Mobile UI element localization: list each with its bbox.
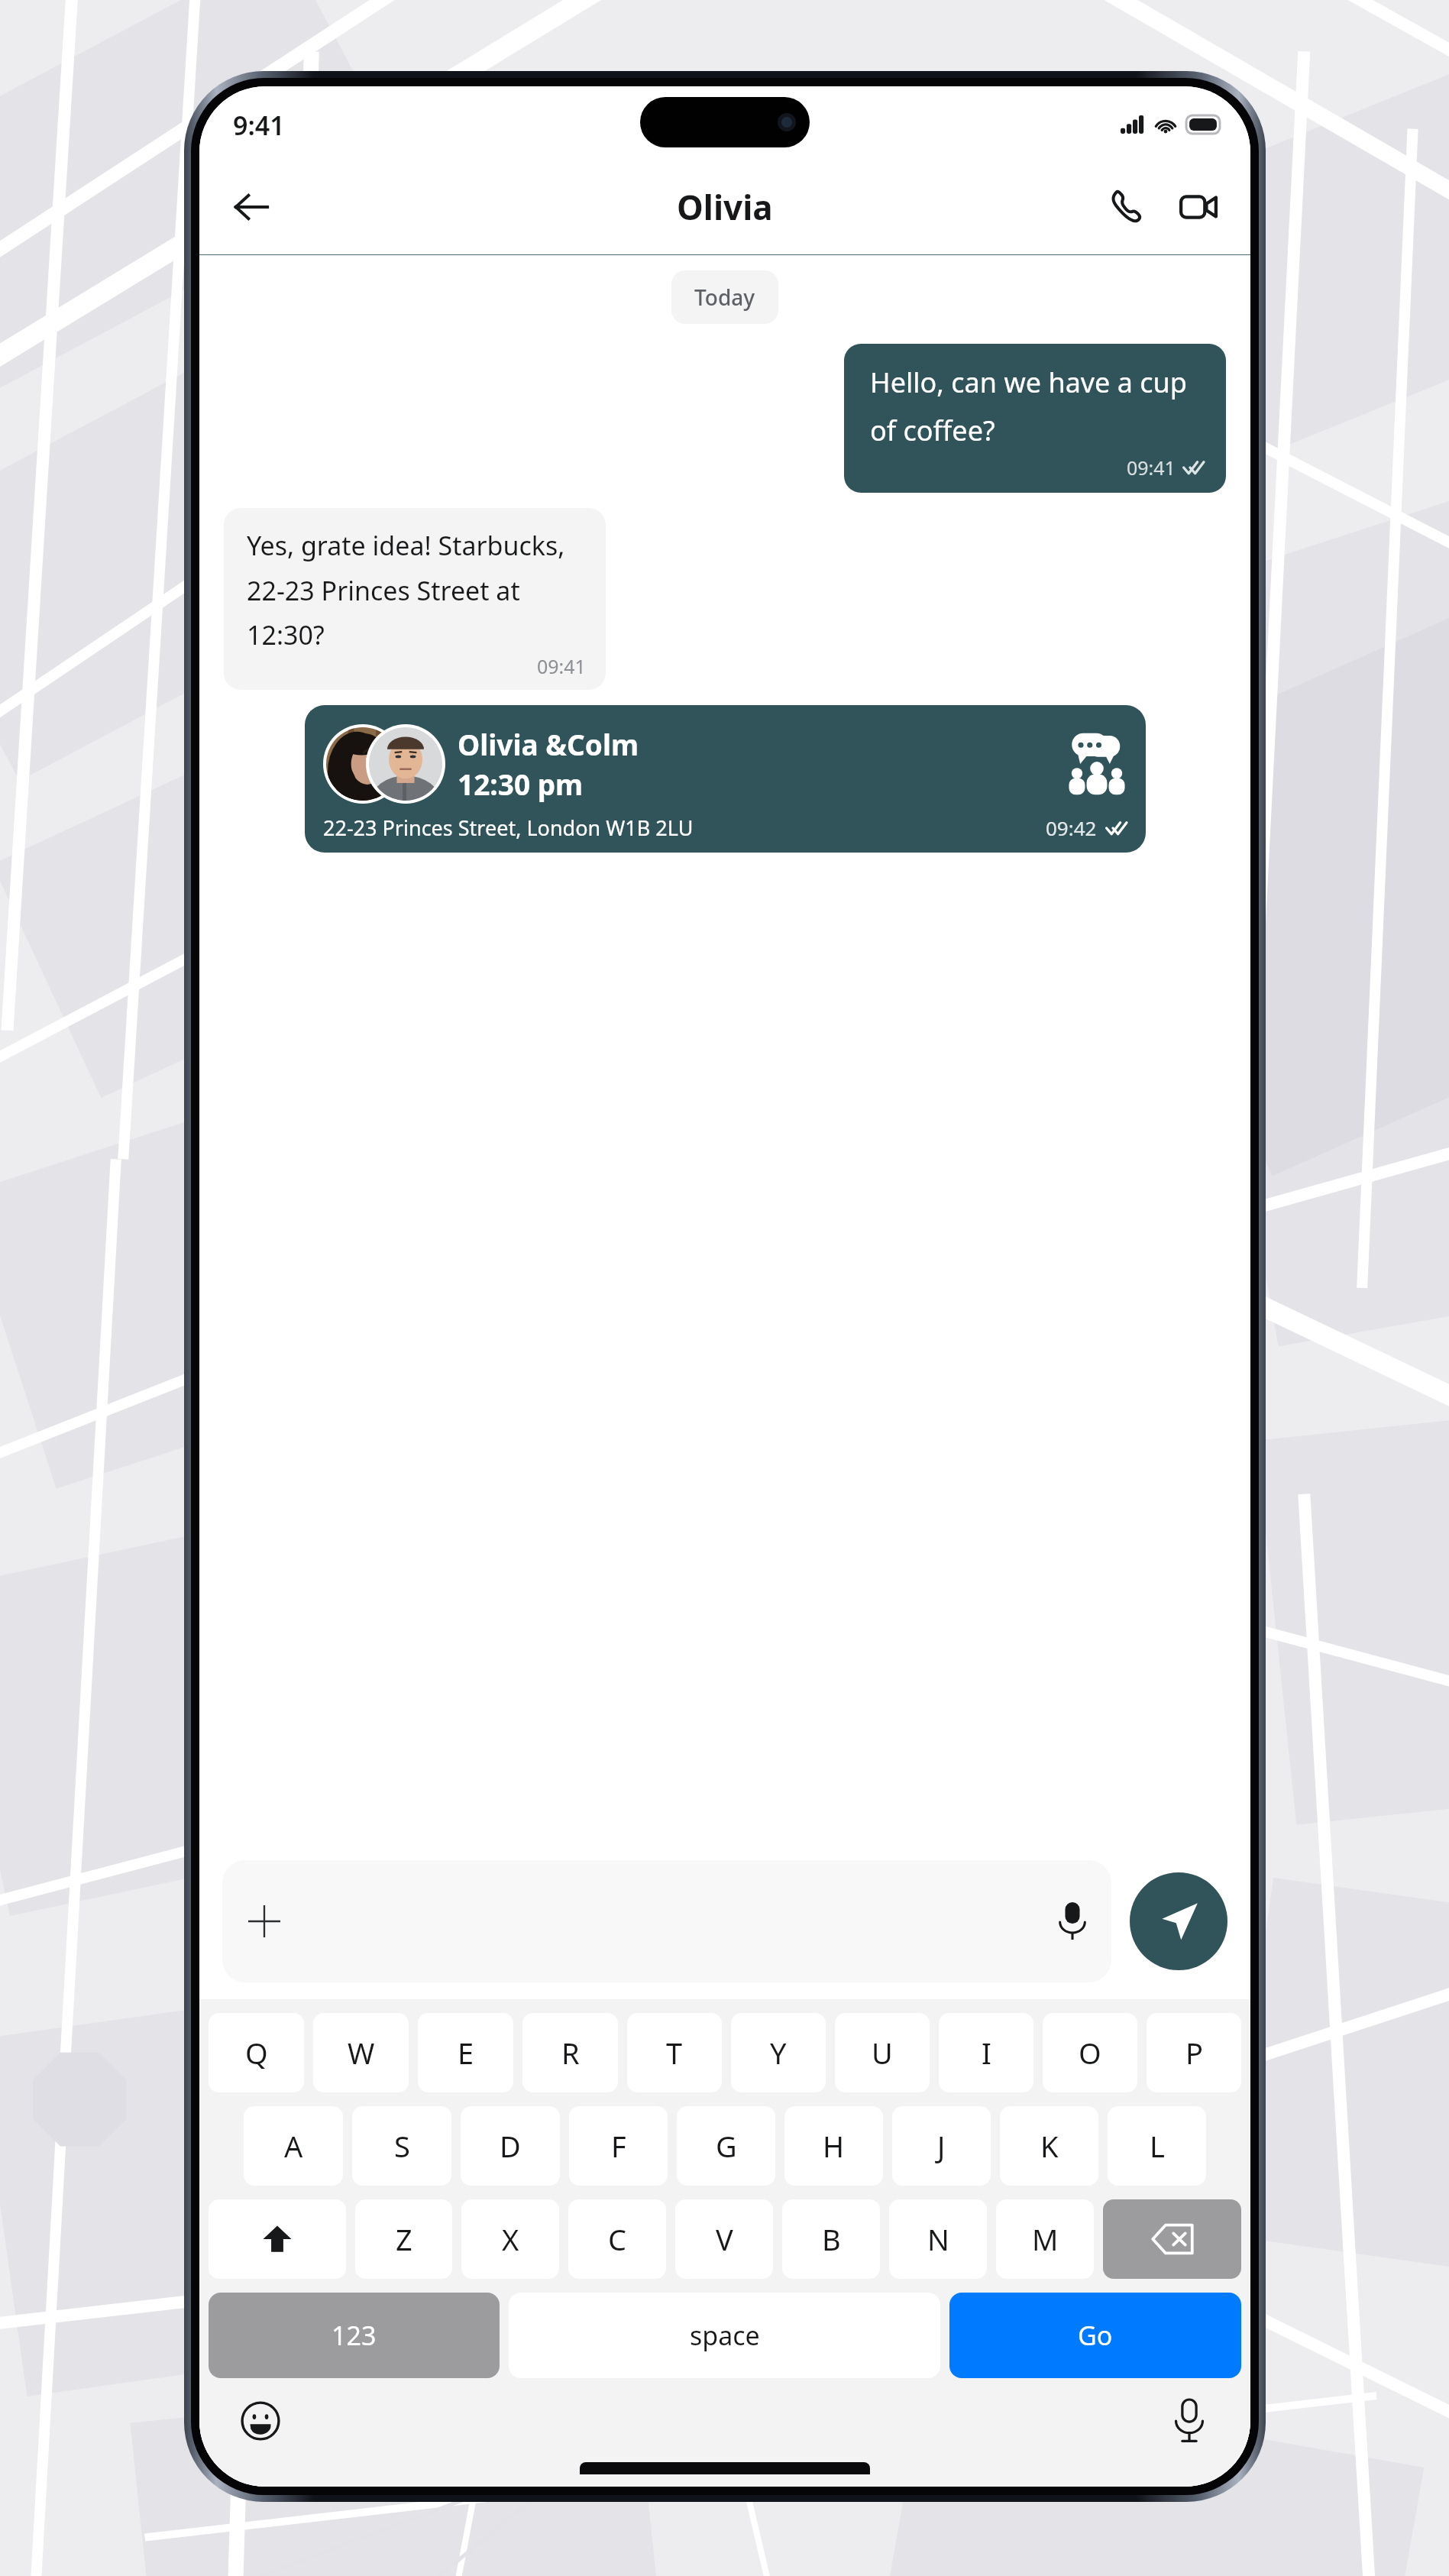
button[interactable]: W bbox=[313, 2013, 409, 2092]
staticText: Y bbox=[770, 2033, 787, 2073]
button[interactable]: A bbox=[244, 2106, 343, 2186]
button[interactable]: S bbox=[352, 2106, 451, 2186]
staticText: Z bbox=[396, 2219, 412, 2259]
staticText: S bbox=[394, 2126, 410, 2166]
staticText: Hello, can we have a cup of coffee? bbox=[870, 364, 1206, 448]
staticText: 12:30 pm bbox=[458, 765, 584, 803]
button[interactable]: P bbox=[1147, 2013, 1241, 2092]
staticText: Today bbox=[694, 283, 755, 312]
button[interactable]: I bbox=[939, 2013, 1033, 2092]
staticText: V bbox=[716, 2219, 733, 2259]
other: Attach bbox=[248, 1905, 280, 1937]
staticText: Olivia bbox=[677, 184, 773, 230]
staticText: C bbox=[608, 2219, 627, 2259]
button[interactable]: E bbox=[418, 2013, 513, 2092]
button[interactable]: space bbox=[509, 2293, 940, 2378]
button[interactable]: J bbox=[892, 2106, 991, 2186]
button[interactable]: C bbox=[568, 2199, 666, 2279]
button[interactable]: Z bbox=[355, 2199, 452, 2279]
button[interactable]: L bbox=[1108, 2106, 1206, 2186]
button[interactable]: Y bbox=[731, 2013, 826, 2092]
staticText: Go bbox=[1078, 2318, 1113, 2353]
staticText: X bbox=[502, 2219, 519, 2259]
button[interactable]: R bbox=[522, 2013, 618, 2092]
staticText: U bbox=[872, 2033, 893, 2073]
staticText: B bbox=[822, 2219, 841, 2259]
staticText: D bbox=[500, 2126, 521, 2166]
staticText: T bbox=[666, 2033, 683, 2073]
staticText: P bbox=[1185, 2033, 1203, 2073]
staticText: R bbox=[561, 2033, 580, 2073]
button[interactable]: M bbox=[996, 2199, 1094, 2279]
button[interactable]: O bbox=[1043, 2013, 1137, 2092]
button[interactable]: N bbox=[889, 2199, 987, 2279]
button[interactable]: Emoji bbox=[233, 2393, 288, 2448]
staticText: Q bbox=[245, 2033, 268, 2073]
button[interactable]: Send bbox=[1130, 1872, 1227, 1970]
button[interactable]: X bbox=[461, 2199, 559, 2279]
staticText: L bbox=[1150, 2126, 1165, 2166]
staticText: 09:41 bbox=[537, 653, 586, 679]
staticText: H bbox=[823, 2126, 845, 2166]
staticText: 123 bbox=[332, 2318, 377, 2353]
staticText: space bbox=[690, 2318, 760, 2353]
button[interactable]: Hello, can we have a cup of coffee? bbox=[844, 344, 1226, 493]
button[interactable]: Dictate bbox=[1162, 2393, 1217, 2448]
button[interactable]: U bbox=[835, 2013, 930, 2092]
staticText: E bbox=[458, 2033, 474, 2073]
button[interactable]: T bbox=[627, 2013, 722, 2092]
staticText: Olivia &Colm bbox=[458, 725, 639, 763]
button[interactable]: F bbox=[569, 2106, 668, 2186]
staticText: A bbox=[284, 2126, 303, 2166]
button[interactable]: Q bbox=[209, 2013, 304, 2092]
button[interactable]: Video call bbox=[1168, 176, 1229, 238]
button[interactable]: Olivia &Colm bbox=[305, 705, 1146, 853]
staticText: 09:42 bbox=[1046, 814, 1097, 841]
button[interactable]: K bbox=[1000, 2106, 1098, 2186]
button[interactable]: Backspace bbox=[1103, 2199, 1241, 2279]
staticText: W bbox=[348, 2033, 375, 2073]
button[interactable]: V bbox=[675, 2199, 773, 2279]
staticText: 22-23 Princes Street, London W1B 2LU bbox=[323, 814, 1046, 842]
staticText: 09:41 bbox=[1127, 455, 1176, 481]
button[interactable]: 123 bbox=[209, 2293, 500, 2378]
other: Voice message bbox=[1059, 1902, 1085, 1940]
staticText: O bbox=[1079, 2033, 1101, 2073]
staticText: M bbox=[1032, 2219, 1059, 2259]
button[interactable]: D bbox=[461, 2106, 560, 2186]
staticText: N bbox=[927, 2219, 949, 2259]
button[interactable]: Today bbox=[671, 270, 778, 324]
staticText: 9:41 bbox=[233, 108, 285, 143]
staticText: F bbox=[611, 2126, 626, 2166]
button[interactable]: H bbox=[784, 2106, 883, 2186]
button[interactable]: Yes, grate idea! Starbucks, 22-23 Prince… bbox=[224, 508, 606, 690]
button[interactable]: G bbox=[677, 2106, 775, 2186]
button[interactable]: B bbox=[782, 2199, 880, 2279]
staticText: Yes, grate idea! Starbucks, 22-23 Prince… bbox=[247, 528, 586, 652]
button[interactable]: Attach bbox=[222, 1860, 1111, 1982]
button[interactable]: Voice call bbox=[1095, 176, 1156, 238]
button[interactable]: Go bbox=[949, 2293, 1241, 2378]
button[interactable]: Shift bbox=[209, 2199, 346, 2279]
staticText: G bbox=[716, 2126, 737, 2166]
staticText: K bbox=[1040, 2126, 1059, 2166]
staticText: I bbox=[982, 2033, 991, 2073]
staticText: J bbox=[937, 2126, 946, 2166]
button[interactable]: Back bbox=[219, 175, 283, 239]
